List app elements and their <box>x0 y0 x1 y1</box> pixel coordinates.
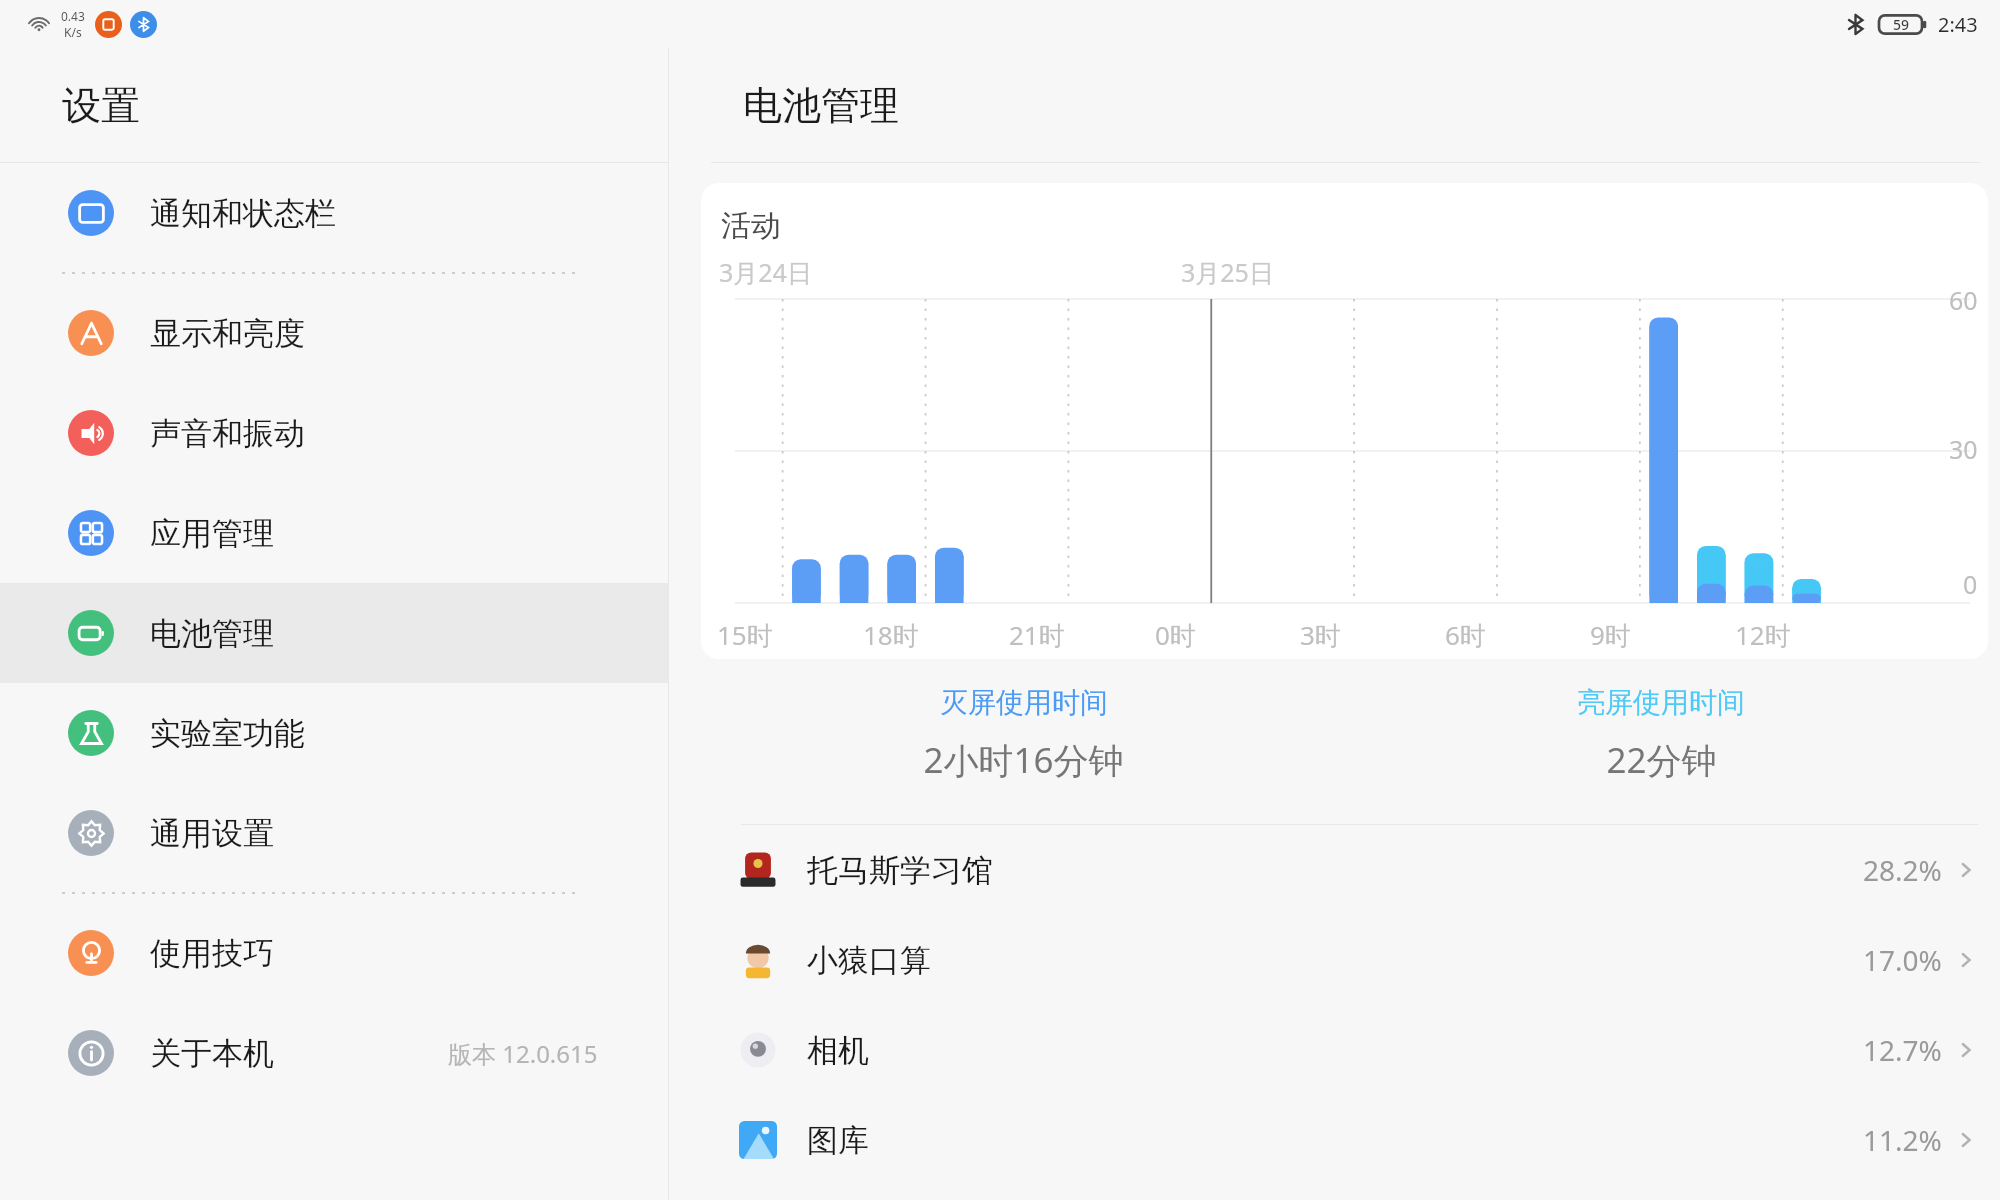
button[interactable]: 显示和亮度 <box>0 283 668 383</box>
staticText: 21时 <box>1009 617 1065 653</box>
staticText: 9时 <box>1590 617 1631 653</box>
staticText: 11.2% <box>1863 1121 1942 1159</box>
staticText: 18时 <box>863 617 919 653</box>
button[interactable]: 关于本机 <box>0 1003 668 1103</box>
button[interactable]: 应用管理 <box>0 483 668 583</box>
staticText: 12时 <box>1735 617 1791 653</box>
staticText: 2:43 <box>1938 11 1978 38</box>
button[interactable]: 电池管理 <box>0 583 668 683</box>
button[interactable]: 通用设置 <box>0 783 668 883</box>
button[interactable]: 小猿口算 <box>669 915 2000 1005</box>
staticText: 3月24日 <box>719 255 812 289</box>
button[interactable]: 相机 <box>669 1005 2000 1095</box>
staticText: 0.43 <box>61 8 85 24</box>
staticText: 59 <box>1893 15 1910 34</box>
staticText: 通用设置 <box>150 814 274 853</box>
staticText: 17.0% <box>1863 941 1942 979</box>
staticText: 托马斯学习馆 <box>807 851 993 890</box>
staticText: 3月25日 <box>1181 255 1274 289</box>
staticText: 图库 <box>807 1121 869 1160</box>
staticText: 亮屏使用时间 <box>1577 685 1745 720</box>
other: Details <box>1956 950 1976 970</box>
staticText: 电池管理 <box>150 614 274 653</box>
staticText: 应用管理 <box>150 514 274 553</box>
staticText: 15时 <box>717 617 773 653</box>
staticText: 使用技巧 <box>150 934 274 973</box>
staticText: 60 <box>1949 283 1978 317</box>
staticText: 小猿口算 <box>807 941 931 980</box>
button[interactable]: 通知和状态栏 <box>0 163 668 263</box>
staticText: 30 <box>1949 432 1978 466</box>
staticText: 相机 <box>807 1031 869 1070</box>
staticText: 0时 <box>1155 617 1196 653</box>
staticText: 通知和状态栏 <box>150 194 336 233</box>
other: Details <box>1956 1040 1976 1060</box>
staticText: 设置 <box>62 81 140 130</box>
staticText: 22分钟 <box>1606 736 1717 784</box>
staticText: 28.2% <box>1863 851 1942 889</box>
other: Details <box>1956 860 1976 880</box>
other: Details <box>1956 1130 1976 1150</box>
button[interactable]: 使用技巧 <box>0 903 668 1003</box>
staticText: 12.7% <box>1863 1031 1942 1069</box>
staticText: 版本 12.0.615 <box>448 1037 598 1070</box>
staticText: 声音和振动 <box>150 414 305 453</box>
staticText: 6时 <box>1445 617 1486 653</box>
staticText: 灭屏使用时间 <box>940 685 1108 720</box>
staticText: 关于本机 <box>150 1034 274 1073</box>
staticText: 2小时16分钟 <box>923 736 1124 784</box>
staticText: 显示和亮度 <box>150 314 305 353</box>
button[interactable]: 托马斯学习馆 <box>669 825 2000 915</box>
button[interactable]: 声音和振动 <box>0 383 668 483</box>
staticText: K/s <box>64 24 82 40</box>
staticText: 电池管理 <box>743 81 899 130</box>
staticText: 实验室功能 <box>150 714 305 753</box>
button[interactable]: 实验室功能 <box>0 683 668 783</box>
staticText: 0 <box>1963 567 1978 601</box>
button[interactable]: 图库 <box>669 1095 2000 1185</box>
staticText: 活动 <box>721 207 781 245</box>
staticText: 3时 <box>1300 617 1341 653</box>
